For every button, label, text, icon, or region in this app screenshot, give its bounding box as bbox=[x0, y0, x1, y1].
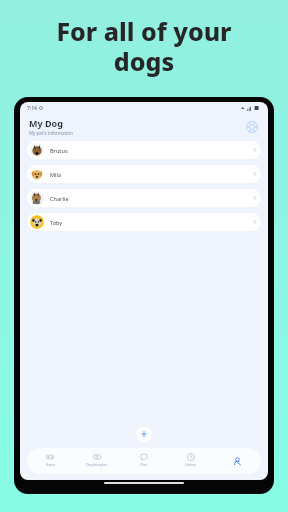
staticText: My pet's information bbox=[29, 130, 73, 136]
staticText: Dog thoughts bbox=[86, 463, 107, 467]
staticText: Game bbox=[46, 463, 55, 467]
staticText: Brutus bbox=[50, 147, 68, 154]
staticText: 7:14 bbox=[27, 105, 37, 112]
staticText: Mila bbox=[50, 171, 62, 178]
staticText: Chat bbox=[140, 463, 147, 467]
button[interactable]: Game bbox=[27, 448, 73, 474]
button[interactable]: Dog thoughts bbox=[73, 448, 120, 474]
staticText: My Dog bbox=[29, 117, 63, 129]
staticText: History bbox=[185, 463, 196, 467]
button[interactable]: History bbox=[167, 448, 214, 474]
button[interactable]: Toby bbox=[27, 213, 261, 231]
button[interactable]: Profile bbox=[214, 448, 261, 474]
button[interactable]: Chat bbox=[120, 448, 167, 474]
button[interactable]: Settings bbox=[245, 120, 259, 134]
staticText: For all of your dogs bbox=[56, 14, 232, 78]
staticText: Toby bbox=[50, 219, 63, 226]
button[interactable]: Add dog bbox=[136, 426, 152, 442]
button[interactable]: Brutus bbox=[27, 141, 261, 159]
button[interactable]: Mila bbox=[27, 165, 261, 183]
button[interactable]: Charlie bbox=[27, 189, 261, 207]
staticText: Charlie bbox=[50, 195, 69, 202]
